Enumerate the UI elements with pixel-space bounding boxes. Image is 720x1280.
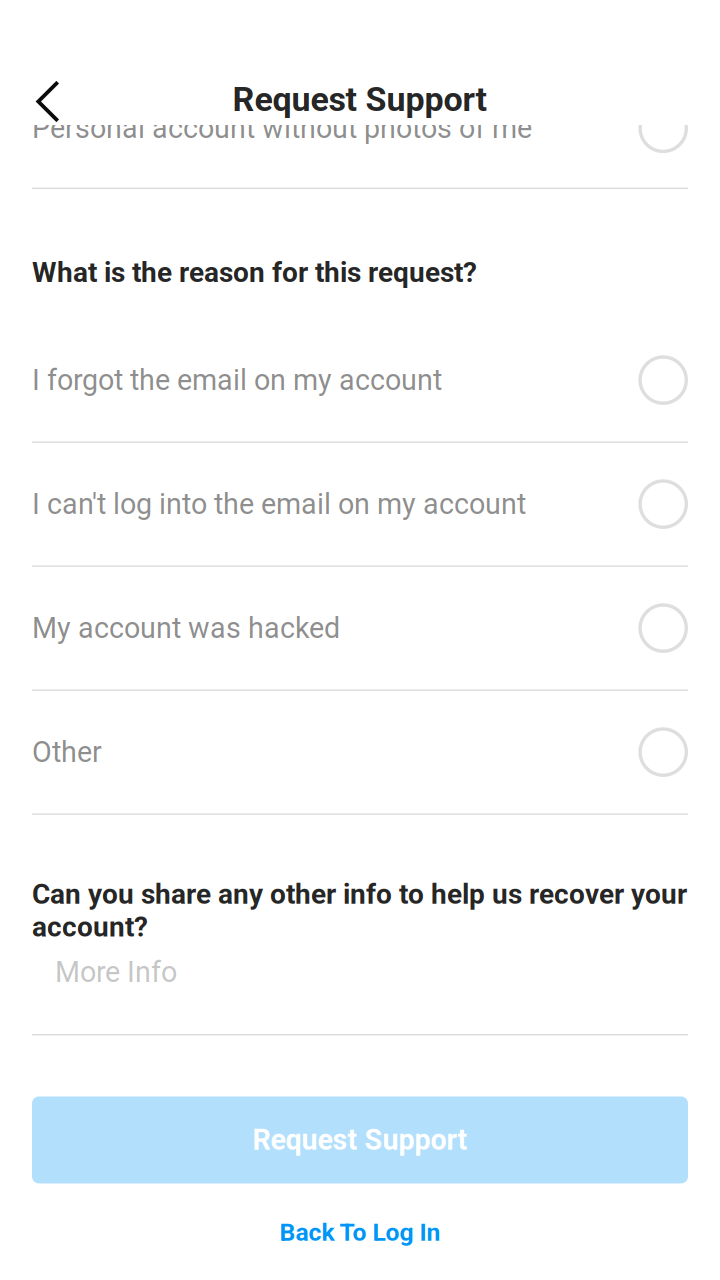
staticText: What is the reason for this request? bbox=[32, 256, 477, 289]
button[interactable]: Back bbox=[0, 71, 76, 127]
staticText: More Info bbox=[55, 955, 177, 989]
staticText: Can you share any other info to help us … bbox=[32, 878, 687, 943]
staticText: My account was hacked bbox=[32, 611, 340, 645]
button[interactable]: I forgot the email on my account bbox=[32, 319, 688, 443]
button[interactable]: I can't log into the email on my account bbox=[32, 443, 688, 567]
staticText: Other bbox=[32, 735, 102, 769]
staticText: I forgot the email on my account bbox=[32, 363, 442, 397]
button[interactable]: Other bbox=[32, 691, 688, 815]
button[interactable]: Back To Log In bbox=[32, 1209, 688, 1255]
staticText: I can't log into the email on my account bbox=[32, 487, 526, 521]
staticText: Request Support bbox=[252, 1123, 467, 1157]
button[interactable]: More Info bbox=[32, 943, 688, 1035]
button[interactable]: Request Support bbox=[32, 1096, 688, 1183]
staticText: Personal account without photos of me bbox=[32, 111, 532, 145]
button[interactable]: Personal account without photos of me bbox=[32, 125, 688, 188]
button[interactable]: My account was hacked bbox=[32, 567, 688, 691]
staticText: Back To Log In bbox=[279, 1218, 440, 1247]
staticText: Request Support bbox=[232, 80, 487, 119]
